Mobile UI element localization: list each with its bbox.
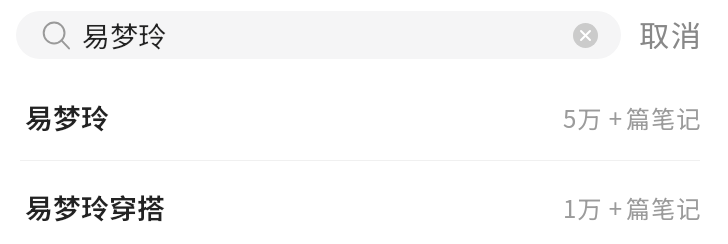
staticText: 易梦玲穿搭 [25,187,166,228]
button[interactable]: 易梦玲 [16,11,621,59]
button[interactable]: Clear search [573,23,598,48]
staticText: 易梦玲 [82,15,167,56]
button[interactable]: 易梦玲 [0,74,728,160]
staticText: 易梦玲 [25,97,110,138]
button[interactable]: 取消 [627,9,715,57]
staticText: 1万 + 篇笔记 [563,190,702,225]
staticText: 5万 + 篇笔记 [563,100,702,135]
button[interactable]: 易梦玲穿搭 [0,163,728,244]
staticText: 取消 [639,12,703,55]
